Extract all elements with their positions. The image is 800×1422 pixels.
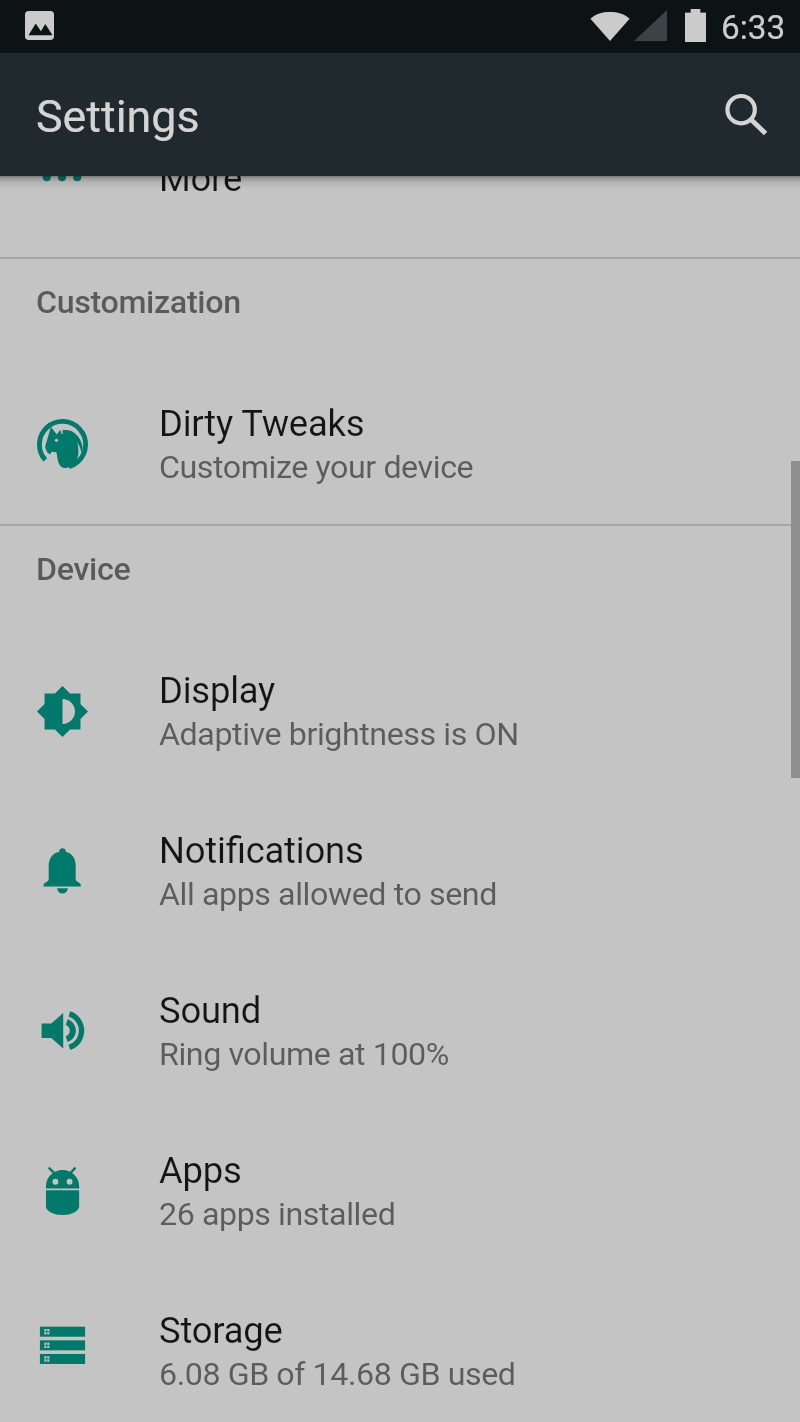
staticText: Display <box>159 669 276 712</box>
staticText: Storage <box>159 1309 283 1352</box>
staticText: Apps <box>159 1149 242 1192</box>
staticText: Notifications <box>159 829 364 872</box>
staticText: Customize your device <box>159 448 474 486</box>
button[interactable]: Sound <box>0 951 800 1111</box>
button[interactable]: Dirty Tweaks <box>0 364 800 524</box>
staticText: 6.08 GB of 14.68 GB used <box>159 1355 516 1393</box>
button[interactable]: More <box>0 176 800 257</box>
button[interactable]: Apps <box>0 1111 800 1271</box>
button[interactable]: Search <box>693 62 799 168</box>
staticText: Device <box>36 550 131 588</box>
staticText: Ring volume at 100% <box>159 1035 449 1073</box>
button[interactable]: Storage <box>0 1271 800 1422</box>
staticText: 6:33 <box>721 8 786 47</box>
staticText: Sound <box>159 989 262 1032</box>
staticText: 26 apps installed <box>159 1195 396 1233</box>
staticText: Dirty Tweaks <box>159 402 365 445</box>
staticText: Adaptive brightness is ON <box>159 715 519 753</box>
staticText: More <box>159 176 243 200</box>
staticText: Settings <box>36 90 200 143</box>
button[interactable]: Display <box>0 631 800 791</box>
staticText: All apps allowed to send <box>159 875 497 913</box>
button[interactable]: Notifications <box>0 791 800 951</box>
staticText: Customization <box>36 283 241 321</box>
